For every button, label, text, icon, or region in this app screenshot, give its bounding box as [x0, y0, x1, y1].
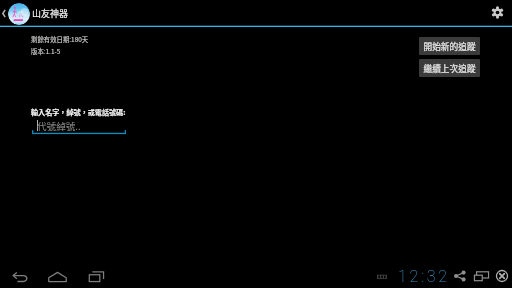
staticText: 輸入名字，綽號，或電話號碼:: [31, 107, 126, 117]
staticText: 代號綽號..: [37, 119, 81, 133]
staticText: 版本:1.1-5: [31, 47, 61, 56]
button[interactable]: Close: [492, 266, 511, 286]
button[interactable]: Settings: [487, 2, 507, 22]
staticText: 山友神器: [32, 7, 69, 20]
button[interactable]: Navigate up: [0, 1, 8, 26]
button[interactable]: 開始新的追蹤: [419, 37, 480, 55]
button[interactable]: Screenshot: [472, 266, 491, 286]
staticText: 開始新的追蹤: [423, 40, 476, 53]
staticText: 繼續上次追蹤: [423, 62, 476, 75]
button[interactable]: Back: [8, 267, 32, 287]
button[interactable]: Home: [45, 267, 69, 287]
button[interactable]: Share: [450, 266, 469, 286]
button[interactable]: 代號綽號..: [32, 117, 126, 134]
button[interactable]: Recent apps: [84, 266, 108, 286]
button[interactable]: 繼續上次追蹤: [419, 59, 480, 77]
staticText: 剩餘有效日期:180天: [31, 35, 89, 44]
staticText: 12:32: [398, 267, 450, 286]
